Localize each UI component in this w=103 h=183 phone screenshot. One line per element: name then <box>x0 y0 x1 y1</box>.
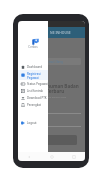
staticText: Informasi <box>31 80 43 84</box>
button[interactable]: Perangkat <box>18 101 48 108</box>
staticText: Logout <box>27 121 37 125</box>
staticText: Download PTK <box>27 96 47 100</box>
staticText: Dashboard <box>27 65 42 69</box>
button[interactable]: Status Pegawai <box>18 80 48 87</box>
button[interactable]: Home <box>49 154 55 160</box>
button[interactable]: Registrasi Ulang <box>22 58 81 65</box>
button[interactable]: List Kontrak <box>18 87 48 94</box>
button[interactable]: Logout <box>18 119 48 126</box>
staticText: Semoga ini sesuai dengan data <box>31 95 67 98</box>
button[interactable] <box>22 135 77 145</box>
button[interactable]: Registrasi Pegawai <box>18 70 48 80</box>
staticText: NE INHOUSE <box>50 30 71 35</box>
staticText: Registrasi Ulang <box>40 60 63 64</box>
staticText: NIP <box>22 102 27 106</box>
staticText: Status Pegawai <box>27 82 48 86</box>
staticText: List Kontrak <box>27 89 44 93</box>
button[interactable]: Recents <box>71 154 77 160</box>
staticText: Cerbos <box>18 45 48 49</box>
button[interactable]: Back <box>26 154 32 160</box>
staticText: Pengumuman Badan Usaha Terbaru <box>31 83 79 94</box>
button[interactable]: Download PTK <box>18 94 48 101</box>
staticText: Registrasi Pegawai <box>27 72 41 79</box>
staticText: Perangkat <box>27 103 41 107</box>
button[interactable]: Dashboard <box>18 63 48 70</box>
